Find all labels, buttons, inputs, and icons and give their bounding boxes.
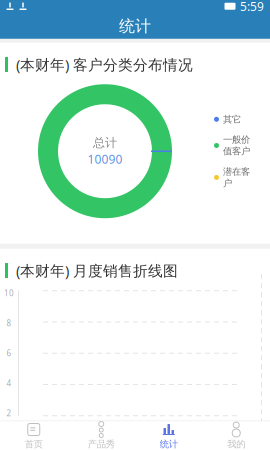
- button[interactable]: 我的: [202, 421, 270, 450]
- staticText: 首页: [25, 438, 43, 450]
- staticText: 6: [6, 348, 11, 358]
- button[interactable]: 产品秀: [67, 421, 135, 450]
- button[interactable]: 统计: [135, 421, 202, 450]
- staticText: 2: [6, 408, 11, 418]
- staticText: (本财年) 客户分类分布情况: [16, 55, 193, 74]
- staticText: 一般价值客户: [223, 134, 250, 157]
- staticText: 4: [6, 378, 11, 388]
- staticText: 产品秀: [88, 438, 115, 450]
- staticText: 5:59: [240, 0, 264, 14]
- staticText: 潜在客户: [223, 166, 250, 189]
- staticText: 10: [4, 288, 14, 298]
- staticText: 其它: [223, 114, 241, 125]
- staticText: 我的: [227, 438, 245, 450]
- staticText: 10090: [87, 151, 122, 167]
- staticText: 8: [6, 318, 11, 328]
- button[interactable]: 首页: [0, 421, 67, 450]
- staticText: 总计: [93, 135, 117, 150]
- staticText: (本财年) 月度销售折线图: [16, 261, 178, 280]
- staticText: 统计: [119, 16, 151, 36]
- staticText: 统计: [160, 438, 178, 450]
